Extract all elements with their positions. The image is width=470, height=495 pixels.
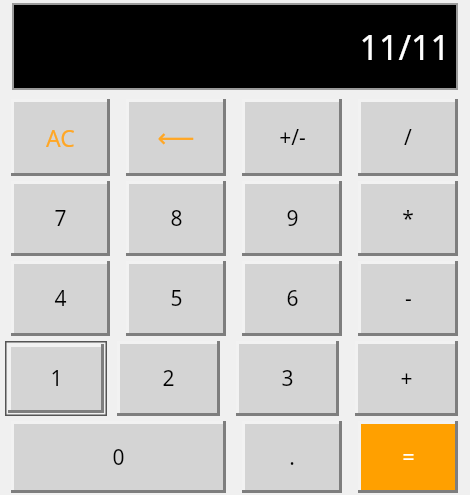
button[interactable]: Backspace [126,99,226,176]
button[interactable]: 2 [117,341,220,416]
staticText: 2 [162,364,175,393]
staticText: + [400,364,413,393]
button[interactable]: 4 [11,261,110,336]
staticText: * [402,204,414,233]
staticText: 3 [281,364,294,393]
staticText: 4 [54,284,67,313]
button[interactable]: AC [11,99,110,176]
button[interactable]: 8 [126,181,226,256]
button[interactable]: +/- [242,99,342,176]
button[interactable]: / [358,99,458,176]
staticText: 11/11 [359,24,450,70]
button[interactable]: 0 [11,421,226,493]
staticText: - [405,284,412,313]
button[interactable]: . [242,421,342,493]
staticText: 5 [170,284,183,313]
staticText: 1 [50,364,63,393]
staticText: = [402,443,415,472]
button[interactable]: 6 [242,261,342,336]
button[interactable]: 5 [126,261,226,336]
button[interactable]: 7 [11,181,110,256]
staticText: 7 [54,204,67,233]
button[interactable]: * [358,181,458,256]
button[interactable]: 1 [8,344,104,413]
button[interactable]: 3 [236,341,339,416]
staticText: . [289,443,295,472]
button[interactable]: 9 [242,181,342,256]
button[interactable]: - [358,261,458,336]
staticText: ⟵ [157,123,195,153]
staticText: +/- [279,123,306,152]
staticText: 9 [286,204,299,233]
staticText: / [404,123,412,152]
button[interactable]: = [358,421,458,493]
staticText: 6 [286,284,299,313]
staticText: AC [46,122,75,153]
staticText: 8 [170,204,183,233]
button[interactable]: + [355,341,458,416]
staticText: 0 [112,443,125,472]
